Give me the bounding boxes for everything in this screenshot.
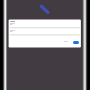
- staticText: CANCEL: [64, 41, 68, 42]
- staticText: Login: [10, 20, 15, 22]
- other: App logo: [38, 3, 52, 17]
- staticText: Username: [10, 23, 15, 24]
- staticText: pass: [10, 31, 13, 33]
- button[interactable]: pass: [10, 31, 13, 33]
- staticText: user: [10, 24, 13, 26]
- staticText: Password: [10, 30, 15, 31]
- button[interactable]: CANCEL: [64, 41, 68, 42]
- button[interactable]: Login: [10, 20, 15, 22]
- button[interactable]: user: [10, 24, 13, 26]
- button[interactable]: Sign in: [73, 41, 79, 44]
